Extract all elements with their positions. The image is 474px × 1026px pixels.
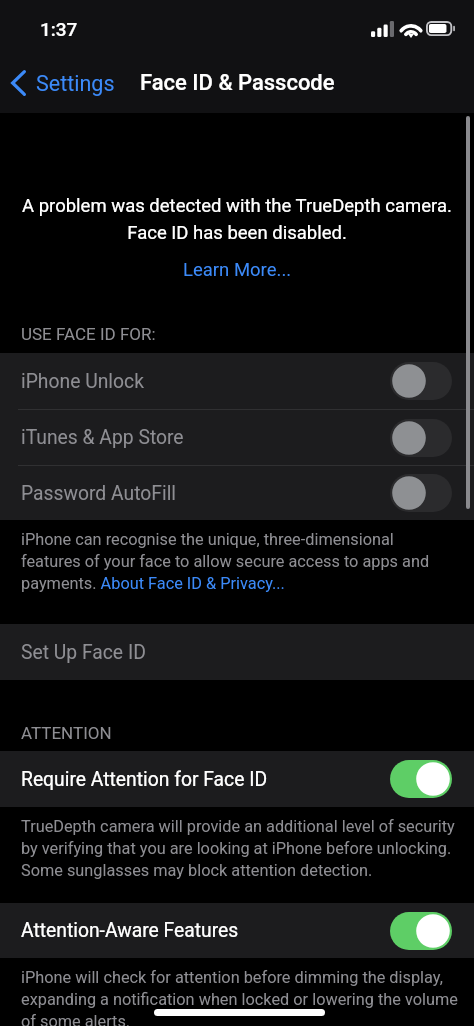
button[interactable]: Back to Settings xyxy=(3,63,123,103)
staticText: A problem was detected with the TrueDept… xyxy=(8,195,466,244)
staticText: Settings xyxy=(36,71,115,96)
staticText: Attention-Aware Features xyxy=(21,919,239,942)
staticText: ATTENTION xyxy=(21,723,112,743)
staticText: iPhone Unlock xyxy=(21,370,144,393)
staticText: Require Attention for Face ID xyxy=(21,768,268,791)
button[interactable]: Toggle on xyxy=(390,760,452,798)
button[interactable]: iTunes & App Store xyxy=(0,410,474,465)
staticText: iTunes & App Store xyxy=(21,426,184,449)
button[interactable]: Toggle off xyxy=(390,474,452,512)
staticText: TrueDepth camera will provide an additio… xyxy=(21,817,461,880)
button[interactable]: Password AutoFill xyxy=(0,466,474,520)
button[interactable]: Toggle on xyxy=(390,912,452,950)
button[interactable]: Toggle off xyxy=(390,419,452,457)
staticText: iPhone can recognise the unique, three-d… xyxy=(21,530,457,593)
staticText: USE FACE ID FOR: xyxy=(21,324,156,344)
button[interactable]: Learn More... xyxy=(175,256,300,284)
staticText: Password AutoFill xyxy=(21,482,177,505)
button[interactable]: Toggle off xyxy=(390,362,452,400)
staticText: 1:37 xyxy=(40,18,78,40)
button[interactable]: Set Up Face ID xyxy=(0,624,474,680)
button[interactable]: iPhone Unlock xyxy=(0,353,474,409)
button[interactable]: Attention-Aware Features xyxy=(0,903,474,958)
button[interactable]: Require Attention for Face ID xyxy=(0,751,474,807)
staticText: Set Up Face ID xyxy=(21,641,146,664)
staticText: Face ID & Passcode xyxy=(140,70,335,96)
staticText: iPhone will check for attention before d… xyxy=(21,968,461,1026)
